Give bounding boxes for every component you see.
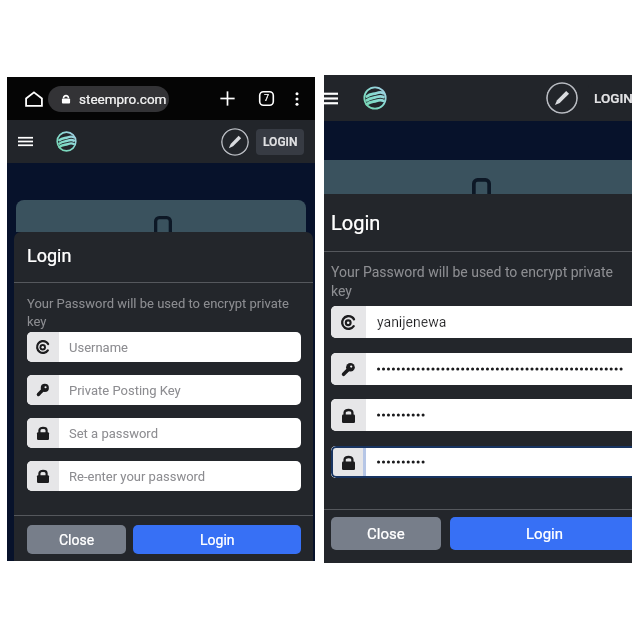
- button[interactable]: Tabs: [252, 77, 280, 120]
- button[interactable]: Close: [331, 517, 441, 550]
- staticText: yanijenewa: [377, 314, 447, 330]
- button[interactable]: Re-enter your password: [27, 461, 301, 491]
- button[interactable]: Login: [450, 517, 632, 550]
- staticText: Private Posting Key: [69, 383, 181, 398]
- staticText: 7: [264, 93, 270, 104]
- button[interactable]: Private Posting Key: [27, 375, 301, 405]
- staticText: Your Password will be used to encrypt pr…: [27, 296, 302, 329]
- staticText: Set a password: [69, 426, 158, 441]
- button[interactable]: More options: [284, 77, 310, 120]
- staticText: Your Password will be used to encrypt pr…: [331, 264, 627, 299]
- staticText: Close: [59, 532, 95, 548]
- button[interactable]: Close: [27, 525, 126, 554]
- button[interactable]: Set a password: [27, 418, 301, 448]
- button[interactable]: Username: [27, 332, 301, 362]
- staticText: Close: [367, 525, 405, 543]
- button[interactable]: Login: [133, 525, 301, 554]
- button[interactable]: steempro.com: [48, 86, 169, 112]
- staticText: LOGIN: [263, 135, 298, 149]
- button[interactable]: yanijenewa: [331, 306, 632, 338]
- button[interactable]: [331, 353, 632, 385]
- button[interactable]: New tab: [213, 77, 241, 120]
- staticText: Username: [69, 340, 128, 355]
- button[interactable]: [331, 446, 632, 478]
- button[interactable]: LOGIN: [588, 84, 632, 112]
- button[interactable]: Home: [19, 77, 48, 120]
- staticText: steempro.com: [79, 91, 167, 107]
- button[interactable]: Menu: [324, 75, 338, 121]
- staticText: Login: [526, 525, 563, 543]
- staticText: Login: [200, 532, 235, 548]
- staticText: Login: [27, 245, 72, 266]
- staticText: LOGIN: [594, 90, 632, 106]
- button[interactable]: Create post: [221, 128, 249, 156]
- button[interactable]: Create post: [546, 82, 578, 114]
- button[interactable]: [331, 399, 632, 431]
- staticText: Login: [331, 211, 381, 234]
- button[interactable]: SteemPro home: [56, 131, 77, 152]
- button[interactable]: LOGIN: [256, 129, 304, 155]
- button[interactable]: SteemPro home: [363, 86, 387, 110]
- button[interactable]: Menu: [18, 120, 33, 163]
- staticText: Re-enter your password: [69, 469, 206, 484]
